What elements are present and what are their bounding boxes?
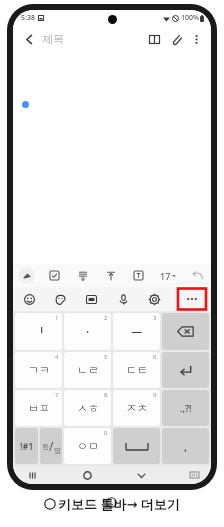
staticText: 7 [55,391,59,399]
staticText: 키보드 툴바→ 더보기 [58,495,180,513]
staticText: ㄱㅋ [28,363,50,377]
button[interactable]: View mode [144,29,164,49]
button[interactable]: space [113,428,160,464]
staticText: 한 [42,442,49,451]
button[interactable]: Home [78,466,96,484]
button[interactable]: ㄱㅋ [15,352,62,388]
button[interactable]: ᅳ [113,313,160,350]
staticText: 6 [153,353,157,361]
button[interactable]: Stickers [52,291,69,308]
button[interactable]: ᅵ [15,313,62,350]
button[interactable]: · [64,313,111,350]
button[interactable]: enter [162,352,209,388]
staticText: 1 [55,314,59,322]
button[interactable]: del [162,313,209,350]
staticText: 제목 [42,32,64,46]
staticText: !#1 [20,440,34,452]
staticText: 9 [153,391,157,399]
button[interactable]: Keyboard layout [187,468,201,482]
button[interactable]: Align [102,267,119,284]
button[interactable]: Indent [74,267,91,284]
button[interactable]: 17 [158,270,178,282]
button[interactable]: ㅂㅍ [15,390,62,426]
button[interactable]: Emoji [21,291,38,308]
button[interactable]: Hide keyboard [132,466,150,484]
staticText: ㅂㅍ [28,401,50,415]
button[interactable]: GIF [83,291,100,308]
staticText: 5 [104,353,108,361]
button[interactable]: More [177,287,207,311]
staticText: 0 [104,429,108,437]
button[interactable]: More options [187,30,205,48]
button[interactable]: .,?! [162,390,209,426]
button[interactable]: Text style [130,267,147,284]
staticText: 영 [54,446,61,455]
staticText: / [49,438,54,454]
staticText: 5:38 [21,13,35,23]
button[interactable]: ㄷㅌ [113,352,160,388]
button[interactable]: , [162,428,209,464]
button[interactable]: !#1 [15,428,38,464]
button[interactable]: 한 [40,428,62,464]
staticText: 2 [104,314,108,322]
staticText: .,?! [180,402,192,414]
button[interactable]: Pen [18,267,35,284]
staticText: 17 [160,270,171,282]
staticText: ㄴㄹ [77,363,99,377]
button[interactable]: Undo [189,267,206,284]
staticText: ᅵ [33,325,45,339]
staticText: 8 [104,391,108,399]
button[interactable]: Voice input [115,291,132,308]
button[interactable]: ㄴㄹ [64,352,111,388]
staticText: ᅳ [131,325,143,339]
staticText: · [86,324,90,340]
staticText: 3 [153,314,157,322]
button[interactable]: ㅅㅎ [64,390,111,426]
button[interactable]: Attach [166,29,186,49]
button[interactable]: Settings [146,291,163,308]
button[interactable]: ㅈㅊ [113,390,160,426]
staticText: ㅈㅊ [126,401,148,415]
button[interactable]: check [46,267,63,284]
button[interactable]: Recents [23,466,41,484]
staticText: 100% [181,13,199,23]
staticText: ㅇㅁ [77,439,99,453]
button[interactable]: Back [19,29,39,49]
staticText: 4 [55,353,59,361]
staticText: , [184,439,188,454]
button[interactable]: ㅇㅁ [64,428,111,464]
staticText: ㄷㅌ [126,363,148,377]
staticText: ㅅㅎ [77,401,99,415]
